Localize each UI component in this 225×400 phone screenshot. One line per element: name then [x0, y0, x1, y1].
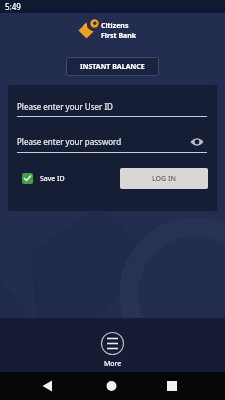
button[interactable]: Please enter your User ID [17, 101, 207, 117]
staticText: Please enter your User ID [17, 101, 113, 112]
staticText: Citizens [101, 21, 129, 31]
staticText: Please enter your password [17, 136, 190, 147]
staticText: Save ID [40, 174, 65, 184]
staticText: First Bank [101, 31, 137, 41]
button[interactable] [75, 372, 150, 400]
button[interactable]: Please enter your password [17, 136, 207, 153]
button[interactable]: Save ID [22, 173, 65, 184]
button[interactable] [150, 372, 225, 400]
staticText: More [104, 359, 122, 369]
staticText: 5:49 [5, 1, 21, 12]
button[interactable]: INSTANT BALANCE [66, 57, 159, 76]
button[interactable] [0, 372, 75, 400]
button[interactable]: More [101, 332, 124, 369]
staticText: INSTANT BALANCE [80, 62, 145, 72]
staticText: LOG IN [152, 174, 176, 184]
button[interactable]: LOG IN [120, 168, 208, 189]
